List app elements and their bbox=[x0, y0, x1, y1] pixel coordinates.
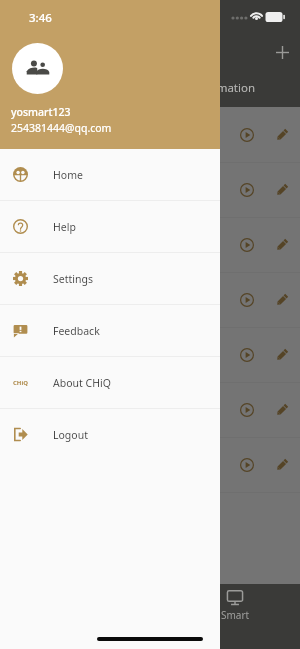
staticText: About CHiQ bbox=[53, 376, 111, 390]
other: Edit bbox=[269, 122, 295, 148]
staticText: 254381444@qq.com bbox=[11, 121, 112, 135]
staticText: Home bbox=[53, 168, 83, 182]
other: Play bbox=[234, 287, 260, 313]
button[interactable]: Logout bbox=[0, 409, 220, 460]
other: Edit bbox=[269, 287, 295, 313]
staticText: 3:46 bbox=[29, 10, 52, 26]
other: Play bbox=[234, 342, 260, 368]
button[interactable]: Play bbox=[0, 218, 300, 272]
other: Edit bbox=[269, 232, 295, 258]
button[interactable]: Smart bbox=[215, 589, 255, 622]
button[interactable]: Help bbox=[0, 201, 220, 252]
other: Edit bbox=[269, 177, 295, 203]
button[interactable]: Add bbox=[270, 40, 294, 64]
other: Play bbox=[234, 397, 260, 423]
staticText: Logout bbox=[53, 428, 88, 442]
other: Play bbox=[234, 232, 260, 258]
button[interactable]: Play bbox=[0, 438, 300, 492]
other: Edit bbox=[269, 452, 295, 478]
button[interactable]: CHiQ bbox=[0, 357, 220, 408]
staticText: yosmart123 bbox=[11, 105, 71, 119]
button[interactable]: Feedback bbox=[0, 305, 220, 356]
staticText: Smart bbox=[221, 608, 250, 622]
staticText: CHiQ bbox=[13, 379, 28, 387]
staticText: Help bbox=[53, 220, 76, 234]
other: Edit bbox=[269, 342, 295, 368]
button[interactable]: Play bbox=[0, 273, 300, 327]
button[interactable]: Play bbox=[0, 328, 300, 382]
staticText: Settings bbox=[53, 272, 93, 286]
staticText: Information bbox=[190, 80, 256, 96]
staticText: Feedback bbox=[53, 324, 100, 338]
button[interactable]: Settings bbox=[0, 253, 220, 304]
other: Play bbox=[234, 122, 260, 148]
button[interactable]: Home bbox=[0, 149, 220, 200]
button[interactable]: Play bbox=[0, 383, 300, 437]
other: Edit bbox=[269, 397, 295, 423]
button[interactable]: Play bbox=[0, 163, 300, 217]
other: Play bbox=[234, 452, 260, 478]
other: Play bbox=[234, 177, 260, 203]
button[interactable]: Play bbox=[0, 108, 300, 162]
button[interactable]: Profile bbox=[12, 43, 63, 94]
